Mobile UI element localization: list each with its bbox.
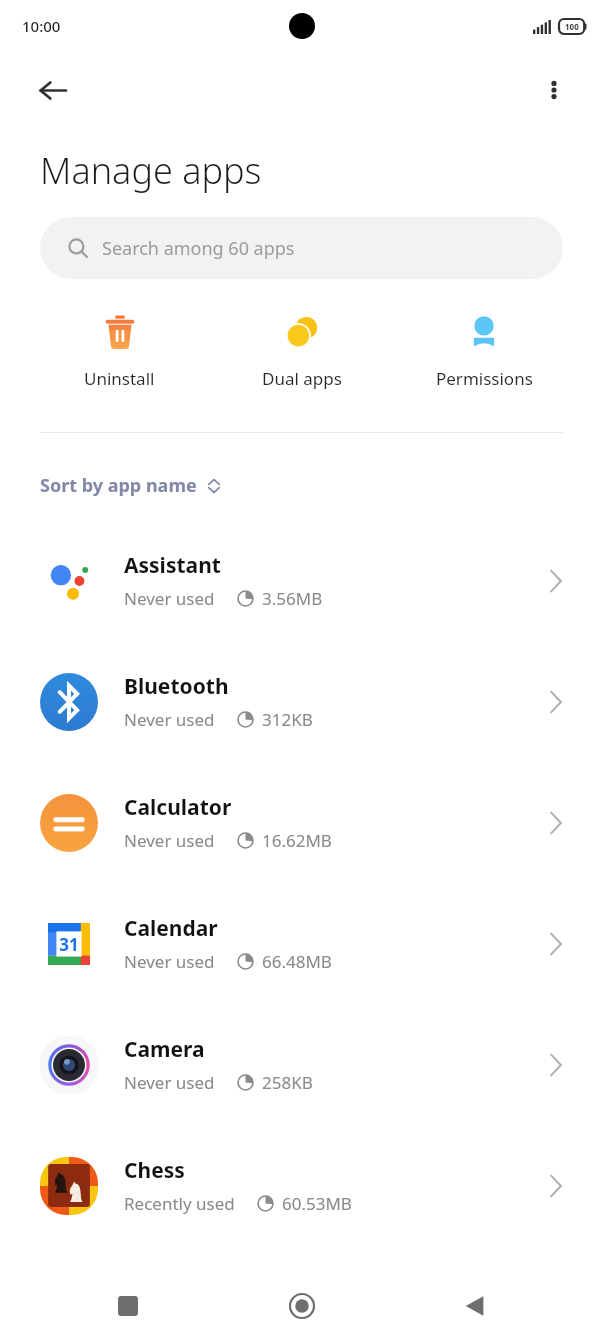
button[interactable]: Dual apps bbox=[211, 305, 393, 396]
button[interactable]: Assistant bbox=[0, 520, 603, 641]
button[interactable]: Recents bbox=[100, 1278, 156, 1334]
button[interactable]: Back bbox=[447, 1278, 503, 1334]
button[interactable]: Search among 60 apps bbox=[40, 217, 563, 279]
button[interactable]: Sort by app name bbox=[40, 473, 221, 498]
staticText: Never used bbox=[124, 708, 215, 731]
staticText: Permissions bbox=[436, 367, 533, 390]
staticText: Manage apps bbox=[40, 146, 262, 195]
staticText: 60.53MB bbox=[282, 1192, 352, 1215]
staticText: 31 bbox=[59, 933, 79, 956]
staticText: Dual apps bbox=[262, 367, 342, 390]
staticText: 258KB bbox=[262, 1071, 313, 1094]
button[interactable]: Uninstall bbox=[28, 305, 211, 396]
button[interactable]: Camera bbox=[0, 1004, 603, 1125]
staticText: Never used bbox=[124, 587, 215, 610]
staticText: Assistant bbox=[124, 551, 221, 580]
staticText: Uninstall bbox=[84, 367, 155, 390]
staticText: Calendar bbox=[124, 914, 218, 943]
button[interactable]: Home bbox=[274, 1278, 330, 1334]
staticText: Never used bbox=[124, 1071, 215, 1094]
button[interactable]: Calculator bbox=[0, 762, 603, 883]
staticText: 3.56MB bbox=[262, 587, 323, 610]
staticText: Recently used bbox=[124, 1192, 235, 1215]
button[interactable]: Bluetooth bbox=[0, 641, 603, 762]
staticText: 16.62MB bbox=[262, 829, 332, 852]
staticText: 66.48MB bbox=[262, 950, 332, 973]
staticText: 10:00 bbox=[22, 16, 61, 36]
button[interactable]: Permissions bbox=[393, 305, 575, 396]
button[interactable]: Back bbox=[28, 66, 76, 114]
button[interactable]: 31 bbox=[0, 883, 603, 1004]
staticText: Never used bbox=[124, 829, 215, 852]
staticText: Calculator bbox=[124, 793, 232, 822]
staticText: Sort by app name bbox=[40, 473, 197, 498]
staticText: Chess bbox=[124, 1156, 185, 1185]
staticText: 100 bbox=[565, 21, 579, 32]
staticText: Bluetooth bbox=[124, 672, 229, 701]
staticText: Search among 60 apps bbox=[102, 236, 295, 261]
button[interactable]: Chess bbox=[0, 1125, 603, 1246]
staticText: Never used bbox=[124, 950, 215, 973]
staticText: 312KB bbox=[262, 708, 313, 731]
button[interactable]: More options bbox=[531, 67, 577, 113]
staticText: Camera bbox=[124, 1035, 205, 1064]
